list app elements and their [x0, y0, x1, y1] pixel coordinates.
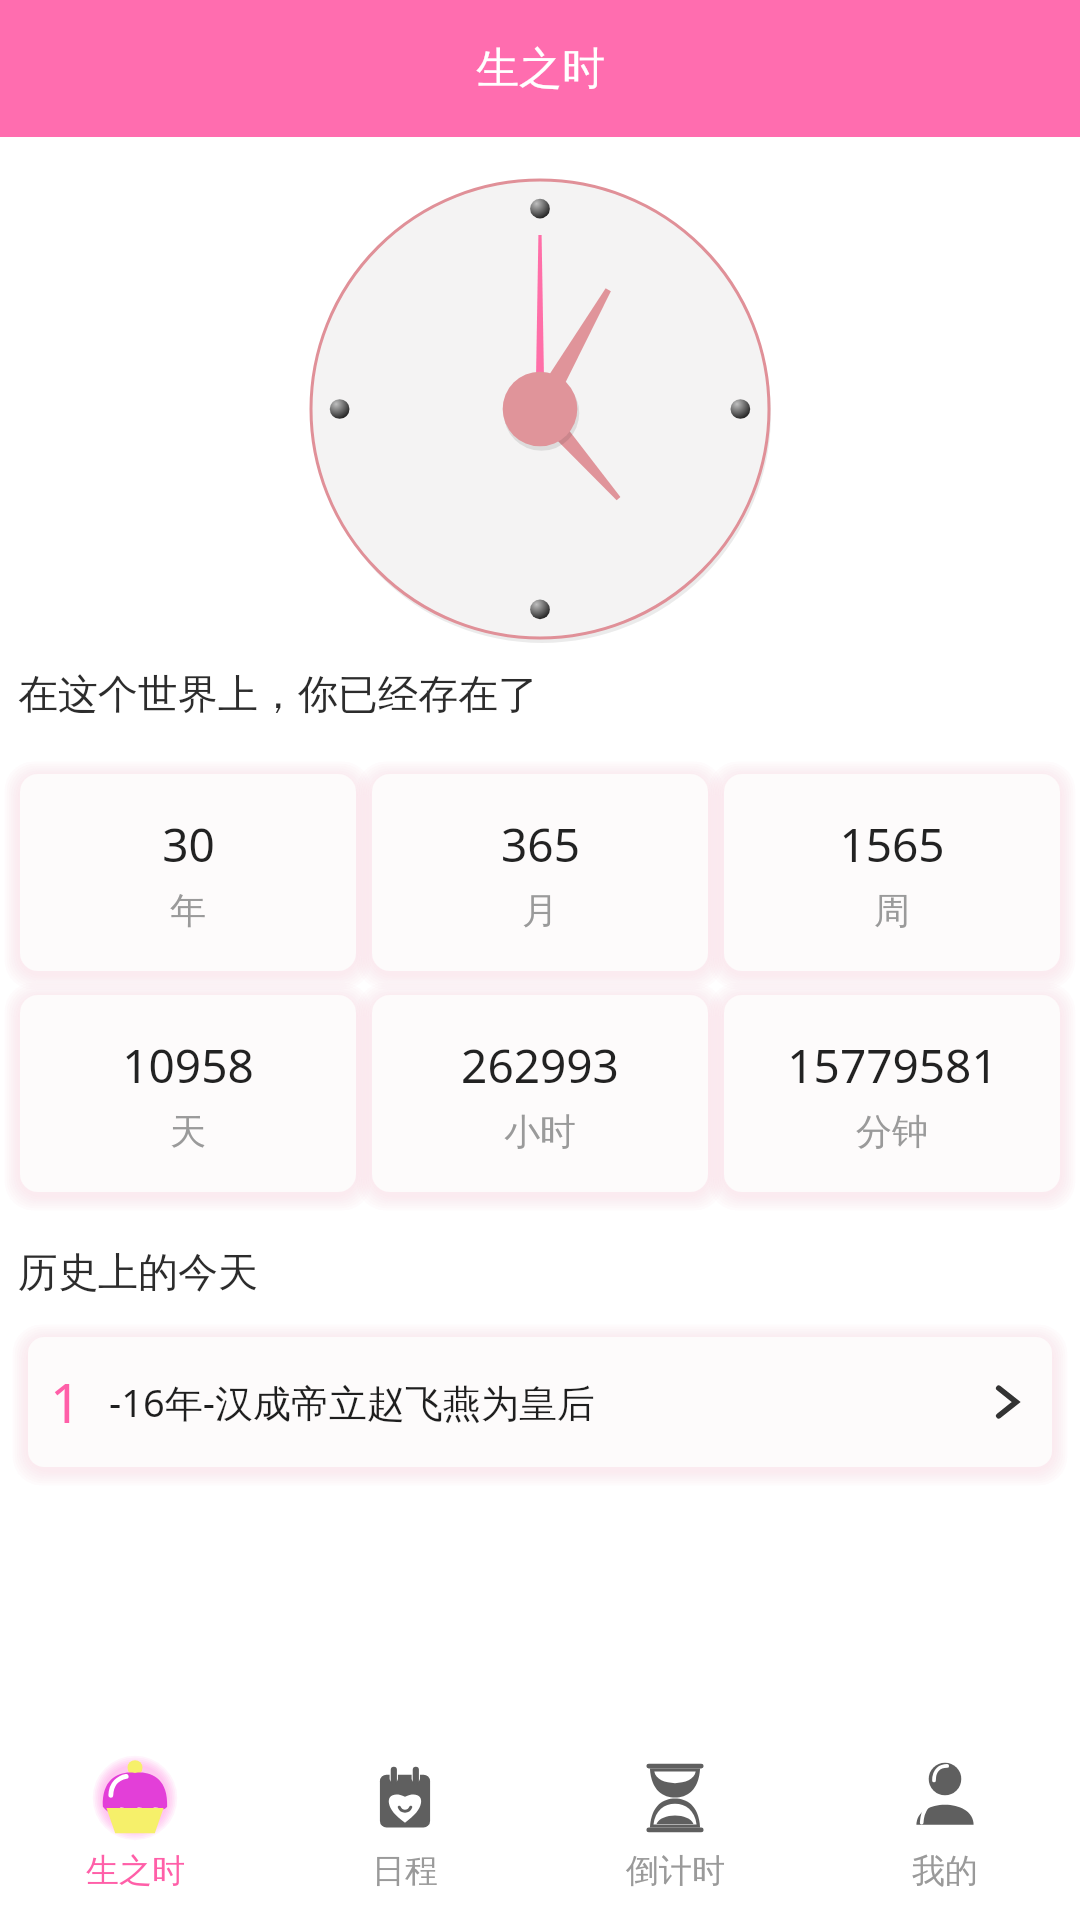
staticText: 在这个世界上，你已经存在了: [18, 669, 538, 719]
staticText: 小时: [504, 1109, 576, 1154]
button[interactable]: 365: [372, 774, 708, 971]
staticText: 周: [874, 888, 910, 933]
button[interactable]: 我的: [810, 1740, 1080, 1920]
staticText: 15779581: [787, 1034, 998, 1097]
staticText: 日程: [372, 1850, 438, 1892]
staticText: 倒计时: [626, 1850, 725, 1892]
button[interactable]: 262993: [372, 995, 708, 1192]
staticText: 生之时: [476, 42, 605, 96]
staticText: 1: [50, 1365, 81, 1439]
staticText: 10958: [122, 1034, 254, 1097]
staticText: 1565: [839, 813, 945, 876]
staticText: 生之时: [86, 1850, 185, 1892]
staticText: 年: [170, 888, 206, 933]
other: 倒计时: [631, 1754, 719, 1842]
button[interactable]: 生之时: [0, 1740, 270, 1920]
staticText: 30: [162, 813, 215, 876]
staticText: 历史上的今天: [18, 1247, 258, 1297]
other: 生之时: [91, 1754, 179, 1842]
button[interactable]: 倒计时: [540, 1740, 810, 1920]
staticText: 我的: [912, 1850, 978, 1892]
other: 我的: [901, 1754, 989, 1842]
button[interactable]: 15779581: [724, 995, 1060, 1192]
button[interactable]: 1: [28, 1337, 1052, 1467]
staticText: 天: [170, 1109, 206, 1154]
other: 查看详情: [984, 1379, 1030, 1425]
button[interactable]: 10958: [20, 995, 356, 1192]
button[interactable]: 1565: [724, 774, 1060, 971]
staticText: 月: [522, 888, 558, 933]
staticText: -16年-汉成帝立赵飞燕为皇后: [109, 1376, 984, 1428]
staticText: 365: [501, 813, 580, 876]
other: 日程: [361, 1754, 449, 1842]
button[interactable]: 日程: [270, 1740, 540, 1920]
button[interactable]: 30: [20, 774, 356, 971]
staticText: 262993: [461, 1034, 619, 1097]
staticText: 分钟: [856, 1109, 928, 1154]
